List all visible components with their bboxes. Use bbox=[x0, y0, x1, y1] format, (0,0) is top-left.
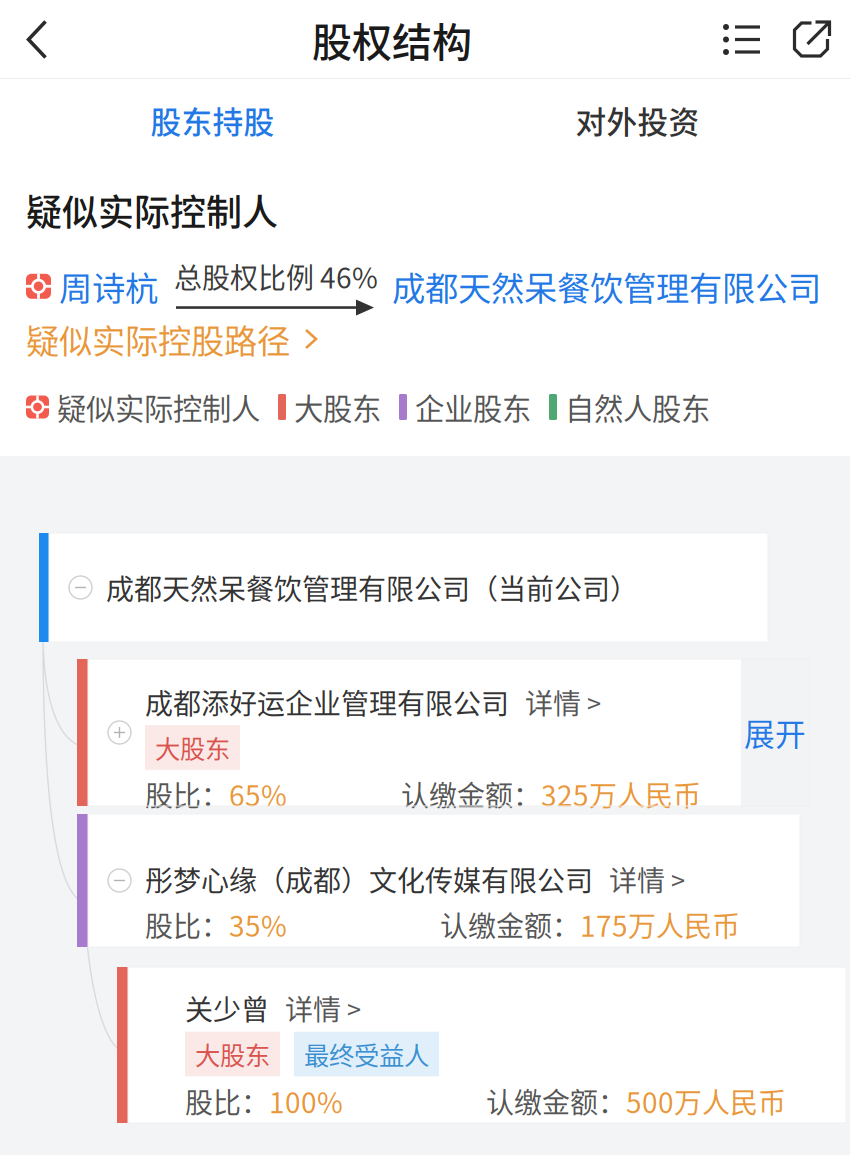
button[interactable]: 返回 bbox=[0, 0, 74, 79]
staticText: 认缴金额： bbox=[440, 904, 580, 945]
staticText: 疑似实际控制人 bbox=[26, 184, 278, 236]
staticText: 展开 bbox=[744, 710, 806, 755]
staticText: 成都添好运企业管理有限公司 bbox=[145, 682, 509, 722]
staticText: 325万人民币 bbox=[541, 774, 701, 814]
staticText: 对外投资 bbox=[575, 98, 699, 142]
staticText: 股比： bbox=[145, 904, 229, 945]
staticText: 成都天然呆餐饮管理有限公司（当前公司） bbox=[106, 567, 638, 608]
staticText: 关少曾 bbox=[185, 988, 269, 1028]
staticText: 疑似实际控股路径 bbox=[26, 315, 290, 363]
staticText: 疑似实际控制人 bbox=[57, 386, 260, 428]
staticText: 详情 bbox=[525, 682, 581, 722]
staticText: 彤梦心缘（成都）文化传媒有限公司 bbox=[145, 859, 593, 899]
staticText: > bbox=[587, 684, 601, 720]
button[interactable]: 股东列表 bbox=[710, 0, 774, 79]
staticText: 股比： bbox=[185, 1081, 269, 1121]
button[interactable]: 详情 bbox=[609, 859, 685, 899]
staticText: > bbox=[671, 861, 685, 897]
button[interactable]: 详情 bbox=[285, 988, 361, 1028]
staticText: 认缴金额： bbox=[401, 774, 541, 814]
staticText: 大股东 bbox=[294, 386, 381, 428]
staticText: 500万人民币 bbox=[626, 1081, 786, 1121]
staticText: 详情 bbox=[285, 988, 341, 1028]
button[interactable]: 疑似实际控股路径 bbox=[26, 314, 824, 364]
staticText: 企业股东 bbox=[415, 386, 531, 428]
staticText: 总股权比例 46% bbox=[174, 256, 378, 296]
staticText: 最终受益人 bbox=[304, 1036, 429, 1072]
staticText: 成都天然呆餐饮管理有限公司 bbox=[392, 262, 821, 310]
staticText: 175万人民币 bbox=[580, 904, 740, 945]
staticText: 股权结构 bbox=[312, 10, 472, 68]
staticText: 股比： bbox=[145, 774, 229, 814]
button[interactable]: 股东持股 bbox=[0, 79, 425, 164]
staticText: 自然人股东 bbox=[565, 386, 710, 428]
staticText: 周诗杭 bbox=[59, 262, 158, 310]
staticText: 100% bbox=[269, 1081, 343, 1121]
button[interactable]: 分享 bbox=[774, 0, 850, 79]
staticText: 大股东 bbox=[155, 729, 230, 766]
staticText: 大股东 bbox=[195, 1036, 270, 1072]
staticText: 认缴金额： bbox=[486, 1081, 626, 1121]
button[interactable]: 展开 bbox=[741, 659, 809, 806]
staticText: 股东持股 bbox=[150, 98, 274, 142]
staticText: 详情 bbox=[609, 859, 665, 899]
staticText: 65% bbox=[229, 774, 287, 814]
staticText: 35% bbox=[229, 904, 287, 945]
button[interactable]: 对外投资 bbox=[425, 79, 850, 164]
button[interactable]: 详情 bbox=[525, 682, 601, 722]
staticText: > bbox=[347, 990, 361, 1026]
